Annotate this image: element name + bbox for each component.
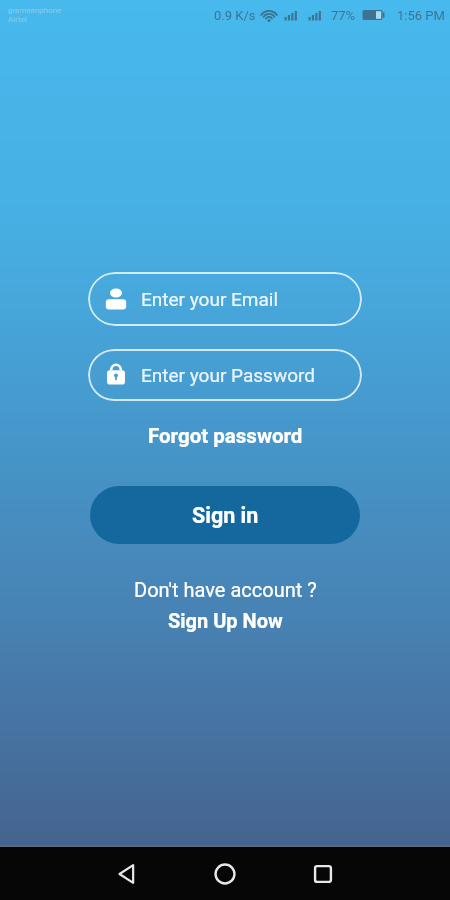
button[interactable]: Forgot password bbox=[148, 422, 303, 450]
staticText: Enter your Password bbox=[141, 364, 315, 386]
button[interactable] bbox=[116, 863, 138, 885]
staticText: Enter your Email bbox=[141, 288, 279, 310]
button[interactable] bbox=[214, 863, 236, 885]
button[interactable]: Sign in bbox=[90, 486, 360, 544]
staticText: Forgot password bbox=[148, 424, 303, 448]
staticText: 77% bbox=[331, 8, 356, 23]
button[interactable]: Enter your Email bbox=[88, 272, 362, 326]
staticText: Airtel bbox=[8, 15, 27, 24]
staticText: Sign Up Now bbox=[168, 609, 283, 632]
button[interactable] bbox=[312, 863, 334, 885]
staticText: Don't have account ? bbox=[134, 578, 317, 601]
staticText: grameenphone bbox=[8, 6, 62, 15]
staticText: 0.9 K/s bbox=[214, 8, 256, 23]
staticText: Sign in bbox=[192, 503, 259, 528]
button[interactable]: Enter your Password bbox=[88, 349, 362, 401]
button[interactable]: Sign Up Now bbox=[168, 606, 283, 634]
staticText: 1:56 PM bbox=[397, 8, 445, 23]
